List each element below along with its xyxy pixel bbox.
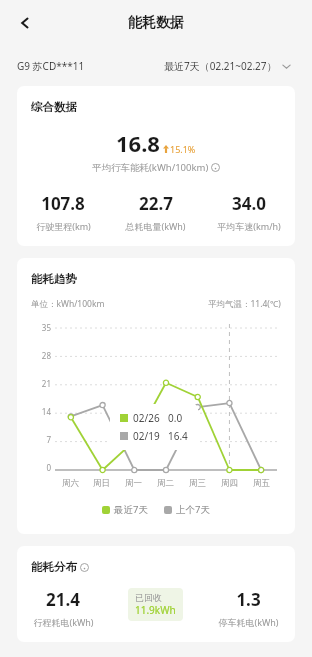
button[interactable]: Back bbox=[10, 8, 40, 38]
staticText: 21.4 bbox=[46, 588, 80, 611]
staticText: 周四 bbox=[221, 478, 238, 489]
staticText: 最近7天（02.21~02.27） bbox=[164, 59, 277, 73]
staticText: 已回收 bbox=[135, 592, 162, 603]
staticText: 平均气温：11.4(℃) bbox=[208, 298, 281, 310]
staticText: 15.1% bbox=[170, 143, 196, 155]
staticText: 周日 bbox=[93, 478, 110, 489]
staticText: 能耗分布 bbox=[31, 560, 77, 574]
staticText: 周三 bbox=[189, 478, 206, 489]
staticText: 能耗数据 bbox=[128, 14, 184, 32]
staticText: 28 bbox=[41, 350, 51, 361]
staticText: 0 bbox=[46, 462, 51, 473]
button[interactable]: 最近7天 bbox=[102, 503, 148, 516]
staticText: 行驶里程(km) bbox=[36, 220, 91, 232]
staticText: 行程耗电(kWh) bbox=[33, 616, 94, 628]
button[interactable]: G9 苏CD***11 bbox=[17, 59, 85, 73]
staticText: 周一 bbox=[125, 478, 142, 489]
staticText: 周五 bbox=[253, 478, 270, 489]
staticText: 平均车速(km/h) bbox=[217, 220, 281, 232]
staticText: 7 bbox=[46, 434, 51, 445]
staticText: 21 bbox=[41, 378, 51, 389]
staticText: 35 bbox=[41, 322, 51, 333]
staticText: 16.4 bbox=[168, 429, 188, 443]
staticText: 总耗电量(kWh) bbox=[125, 220, 186, 232]
staticText: 能耗趋势 bbox=[31, 272, 77, 286]
staticText: 单位：kWh/100km bbox=[31, 298, 105, 310]
staticText: 14 bbox=[41, 406, 51, 417]
staticText: 02/19 bbox=[133, 429, 160, 443]
staticText: 22.7 bbox=[139, 192, 173, 215]
staticText: 16.8 bbox=[116, 128, 160, 158]
staticText: 周六 bbox=[62, 478, 79, 489]
button[interactable]: 最近7天（02.21~02.27） bbox=[164, 59, 291, 73]
staticText: 02/26 bbox=[133, 411, 160, 425]
staticText: 0.0 bbox=[168, 411, 183, 425]
staticText: 11.9kWh bbox=[135, 603, 176, 617]
staticText: 平均行车能耗(kWh/100km) bbox=[92, 161, 209, 174]
staticText: 停车耗电(kWh) bbox=[218, 616, 279, 628]
staticText: 周二 bbox=[157, 478, 174, 489]
staticText: 107.8 bbox=[41, 192, 85, 215]
staticText: 1.3 bbox=[236, 588, 261, 611]
staticText: 34.0 bbox=[232, 192, 266, 215]
button[interactable]: 上个7天 bbox=[164, 503, 210, 516]
staticText: 综合数据 bbox=[31, 100, 77, 114]
staticText: 上个7天 bbox=[176, 503, 210, 516]
staticText: 最近7天 bbox=[114, 503, 148, 516]
